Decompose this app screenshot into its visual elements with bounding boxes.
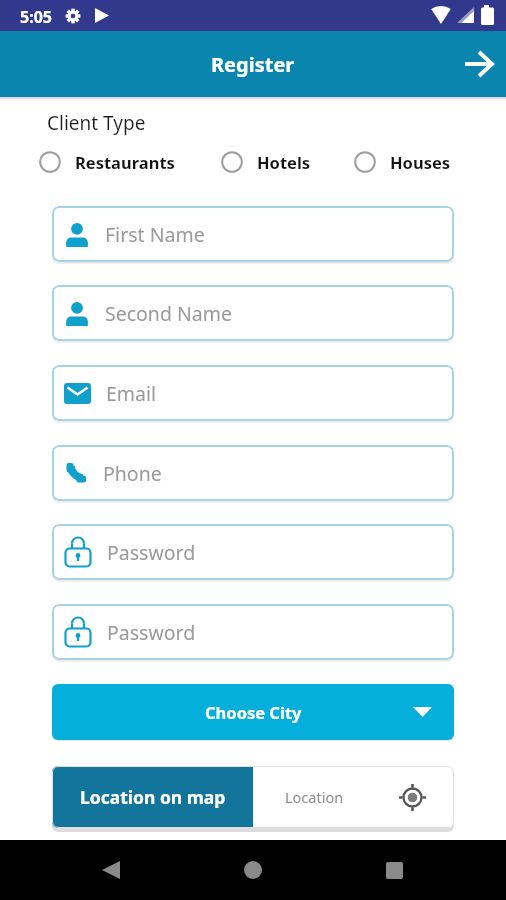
staticText: Houses xyxy=(390,151,451,173)
button[interactable]: Phone xyxy=(52,445,454,501)
button[interactable] xyxy=(244,861,262,879)
staticText: Phone xyxy=(103,460,162,487)
button[interactable]: Choose City xyxy=(52,684,454,740)
staticText: Choose City xyxy=(205,701,302,723)
button[interactable]: Location xyxy=(253,766,454,828)
staticText: Client Type xyxy=(47,110,146,136)
staticText: Restaurants xyxy=(75,151,175,173)
staticText: First Name xyxy=(105,221,205,248)
button[interactable]: Restaurants xyxy=(40,151,175,173)
button[interactable]: Hotels xyxy=(222,151,311,173)
staticText: Second Name xyxy=(105,300,232,327)
button[interactable]: First Name xyxy=(52,206,454,262)
button[interactable]: Password xyxy=(52,604,454,660)
staticText: 5:05 xyxy=(20,6,52,28)
staticText: Register xyxy=(211,51,295,78)
staticText: Password xyxy=(107,619,196,646)
button[interactable]: Location on map xyxy=(52,766,253,828)
staticText: Location on map xyxy=(80,785,226,809)
button[interactable]: Second Name xyxy=(52,285,454,341)
staticText: Hotels xyxy=(257,151,311,173)
button[interactable] xyxy=(386,862,403,879)
button[interactable]: Houses xyxy=(355,151,451,173)
staticText: Email xyxy=(106,380,157,407)
button[interactable]: Password xyxy=(52,524,454,580)
button[interactable] xyxy=(464,49,494,79)
staticText: Password xyxy=(107,539,196,566)
staticText: Location xyxy=(285,787,344,807)
button[interactable] xyxy=(102,861,120,879)
button[interactable]: Email xyxy=(52,365,454,421)
